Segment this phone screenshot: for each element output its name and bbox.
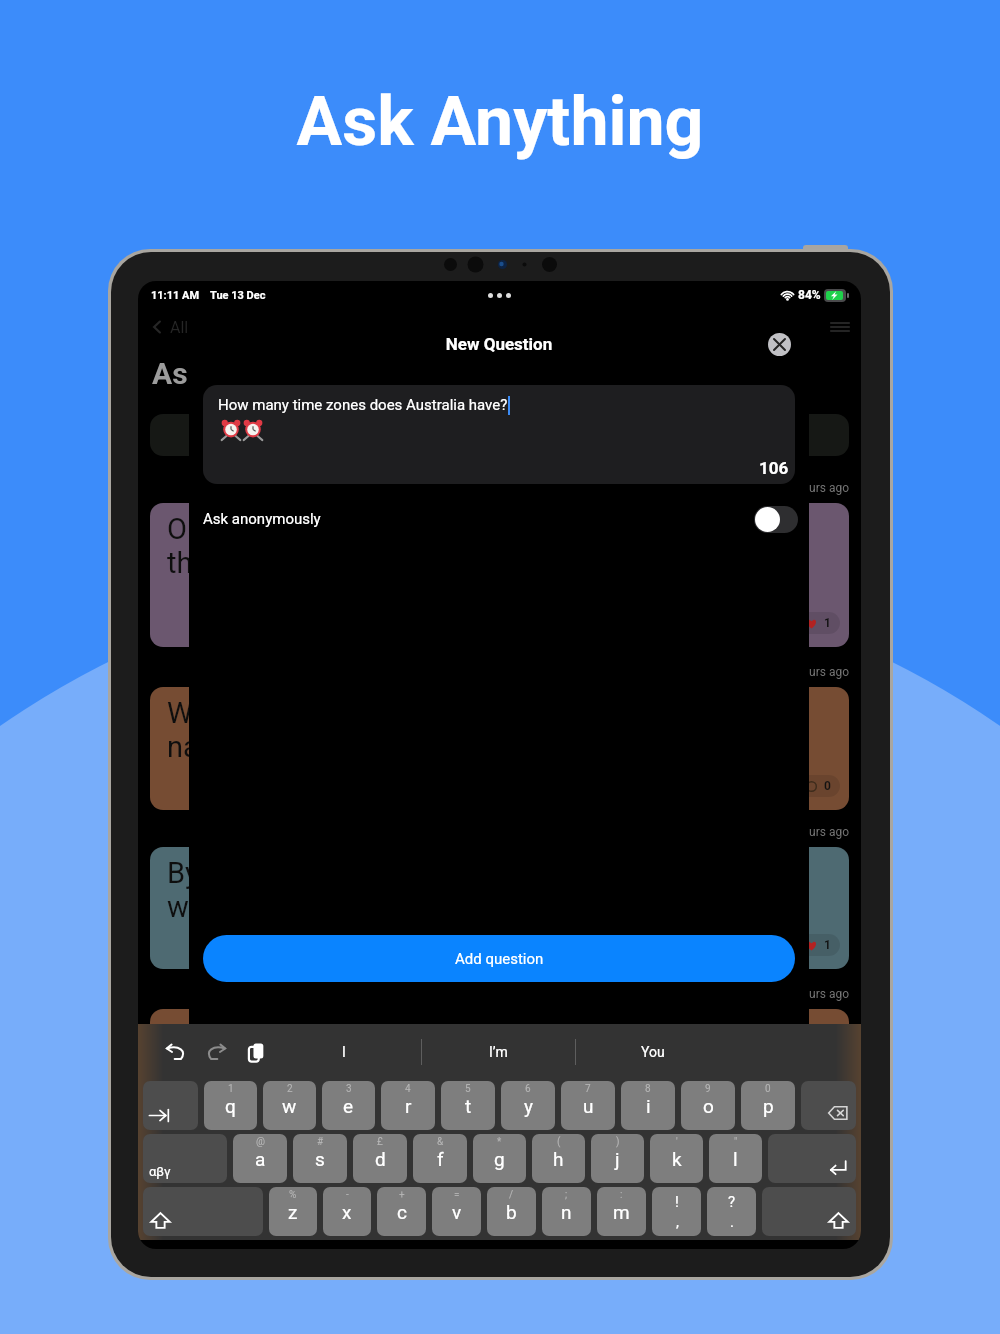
- button[interactable]: w: [263, 1081, 316, 1130]
- button[interactable]: Add question: [203, 935, 795, 982]
- staticText: 0: [765, 1083, 771, 1095]
- staticText: /: [509, 1189, 514, 1201]
- staticText: t: [465, 1095, 472, 1117]
- button[interactable]: Close: [768, 333, 791, 356]
- staticText: ': [676, 1136, 678, 1148]
- staticText: 5 hours ago: [150, 481, 490, 495]
- staticText: :: [620, 1189, 623, 1201]
- button[interactable]: !: [652, 1187, 701, 1236]
- staticText: 84%: [798, 288, 821, 302]
- button[interactable]: t: [441, 1081, 495, 1130]
- staticText: @: [256, 1136, 265, 1148]
- button[interactable]: Even: [509, 1009, 849, 1149]
- staticText: z: [288, 1201, 298, 1223]
- staticText: w: [282, 1095, 297, 1117]
- staticText: m: [613, 1201, 630, 1223]
- button[interactable]: Can you: [509, 847, 849, 969]
- button[interactable]: x: [323, 1187, 371, 1236]
- staticText: Ask: [152, 356, 204, 391]
- button[interactable]: enter: [768, 1134, 856, 1183]
- button[interactable]: abg: [143, 1134, 227, 1183]
- staticText: there: [167, 546, 233, 580]
- button[interactable]: d: [353, 1134, 407, 1183]
- button[interactable]: s: [293, 1134, 347, 1183]
- button[interactable]: Or are: [150, 503, 490, 647]
- staticText: 2: [287, 1083, 293, 1095]
- button[interactable]: b: [487, 1187, 536, 1236]
- button[interactable]: shift: [762, 1187, 856, 1236]
- button[interactable]: Ask anonymously: [203, 496, 798, 542]
- staticText: 7: [585, 1083, 591, 1095]
- button[interactable]: r: [381, 1081, 435, 1130]
- button[interactable]: v: [432, 1187, 481, 1236]
- staticText: %: [289, 1189, 297, 1201]
- staticText: u: [583, 1095, 594, 1117]
- button[interactable]: a: [233, 1134, 287, 1183]
- staticText: ;: [565, 1189, 568, 1201]
- button[interactable]: ?: [707, 1187, 756, 1236]
- button[interactable]: [150, 414, 490, 456]
- button[interactable]: More: [150, 1009, 490, 1149]
- button[interactable]: Paste: [242, 1038, 270, 1066]
- button[interactable]: i: [621, 1081, 675, 1130]
- button[interactable]: k: [650, 1134, 703, 1183]
- button[interactable]: p: [741, 1081, 795, 1130]
- staticText: q: [225, 1095, 236, 1117]
- staticText: .: [730, 1213, 734, 1231]
- staticText: ,: [676, 1213, 679, 1231]
- staticText: 11:11 AM: [151, 289, 200, 302]
- button[interactable]: shift: [143, 1187, 263, 1236]
- staticText: 5: [465, 1083, 471, 1095]
- button[interactable]: h: [532, 1134, 585, 1183]
- button[interactable]: g: [473, 1134, 526, 1183]
- staticText: &: [437, 1136, 444, 1148]
- button[interactable]: y: [501, 1081, 555, 1130]
- staticText: a: [255, 1148, 266, 1170]
- button[interactable]: j: [591, 1134, 644, 1183]
- button[interactable]: n: [542, 1187, 591, 1236]
- button[interactable]: u: [561, 1081, 615, 1130]
- staticText: b: [506, 1201, 517, 1223]
- staticText: f: [437, 1148, 444, 1170]
- button[interactable]: When do: [509, 687, 849, 810]
- staticText: 3: [346, 1083, 352, 1095]
- staticText: (: [557, 1136, 561, 1148]
- staticText: way: [167, 890, 219, 924]
- button[interactable]: bksp: [801, 1081, 856, 1130]
- button[interactable]: I’m: [422, 1030, 575, 1074]
- button[interactable]: How many time zones does Australia have?: [203, 385, 795, 484]
- staticText: 5 hours ago: [509, 825, 849, 839]
- button[interactable]: q: [204, 1081, 257, 1130]
- staticText: 0: [824, 779, 831, 793]
- button[interactable]: l: [709, 1134, 762, 1183]
- staticText: 5 hours ago: [509, 665, 849, 679]
- button[interactable]: m: [597, 1187, 646, 1236]
- button[interactable]: Why are: [150, 687, 490, 810]
- button[interactable]: By the: [150, 847, 490, 969]
- button[interactable]: [509, 414, 849, 456]
- button[interactable]: z: [269, 1187, 317, 1236]
- staticText: ): [616, 1136, 620, 1148]
- button[interactable]: e: [322, 1081, 375, 1130]
- staticText: ?: [728, 1193, 736, 1211]
- staticText: !: [675, 1193, 679, 1211]
- button[interactable]: c: [377, 1187, 426, 1236]
- button[interactable]: f: [413, 1134, 467, 1183]
- button[interactable]: Redo: [202, 1038, 230, 1066]
- button[interactable]: You: [576, 1030, 729, 1074]
- button[interactable]: How do: [509, 503, 849, 647]
- staticText: i: [646, 1095, 651, 1117]
- button[interactable]: I: [267, 1030, 421, 1074]
- staticText: Why are: [167, 696, 271, 730]
- staticText: Ask anonymously: [203, 510, 321, 528]
- staticText: n: [561, 1201, 572, 1223]
- staticText: 4: [405, 1083, 411, 1095]
- staticText: Ask Anything: [0, 82, 1000, 162]
- button[interactable]: tab: [143, 1081, 198, 1130]
- button[interactable]: Undo: [162, 1038, 190, 1066]
- button[interactable]: o: [681, 1081, 735, 1130]
